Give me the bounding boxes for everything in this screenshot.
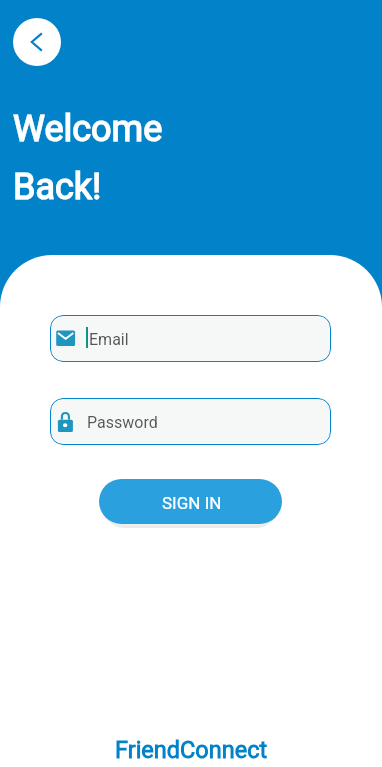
staticText: Back! (13, 166, 102, 208)
button[interactable]: Email (50, 315, 331, 362)
button[interactable]: Back (13, 18, 61, 66)
staticText: SIGN IN (162, 493, 222, 513)
staticText: Email (89, 330, 129, 349)
button[interactable]: SIGN IN (99, 479, 282, 524)
staticText: FriendConnect (115, 736, 268, 764)
staticText: Password (87, 413, 158, 432)
staticText: Welcome (13, 108, 163, 150)
button[interactable]: Password (50, 398, 331, 445)
